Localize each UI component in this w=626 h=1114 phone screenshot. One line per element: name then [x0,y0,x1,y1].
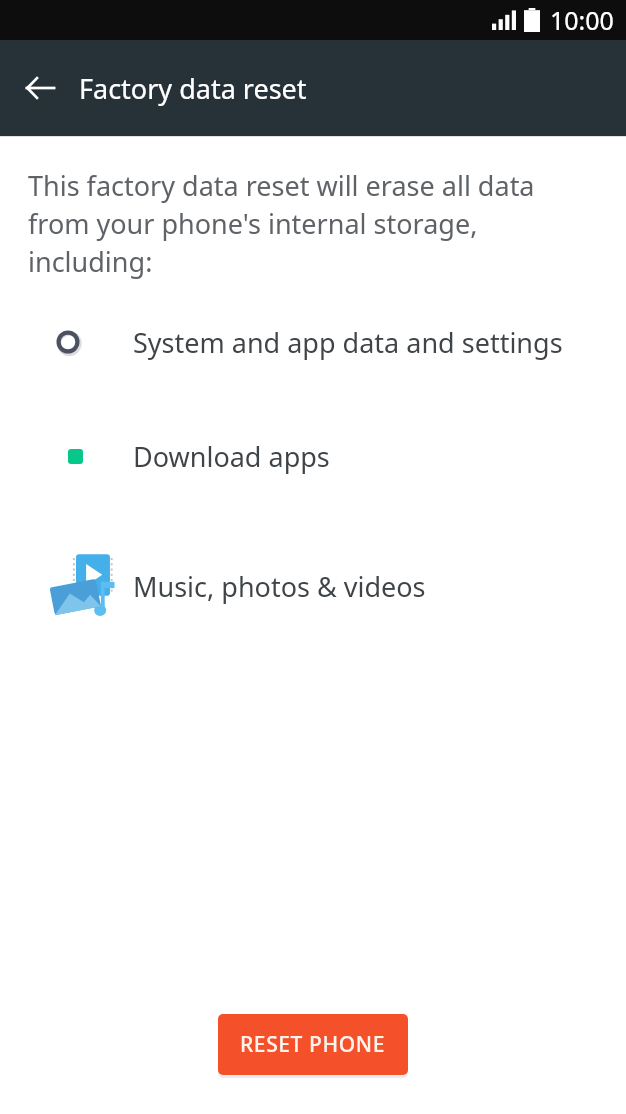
staticText: Music, photos & videos [133,568,426,605]
button[interactable]: Back [14,62,66,114]
staticText: Download apps [133,438,330,475]
button[interactable]: System and app data and settings [0,322,626,362]
button[interactable]: Download apps [0,438,626,475]
staticText: System and app data and settings [133,324,563,361]
staticText: RESET PHONE [240,1030,386,1059]
button[interactable]: RESET PHONE [218,1014,408,1075]
button[interactable]: Music, photos & videos [0,551,626,621]
staticText: This factory data reset will erase all d… [28,167,596,280]
staticText: 10:00 [550,3,614,37]
staticText: Factory data reset [79,70,307,107]
